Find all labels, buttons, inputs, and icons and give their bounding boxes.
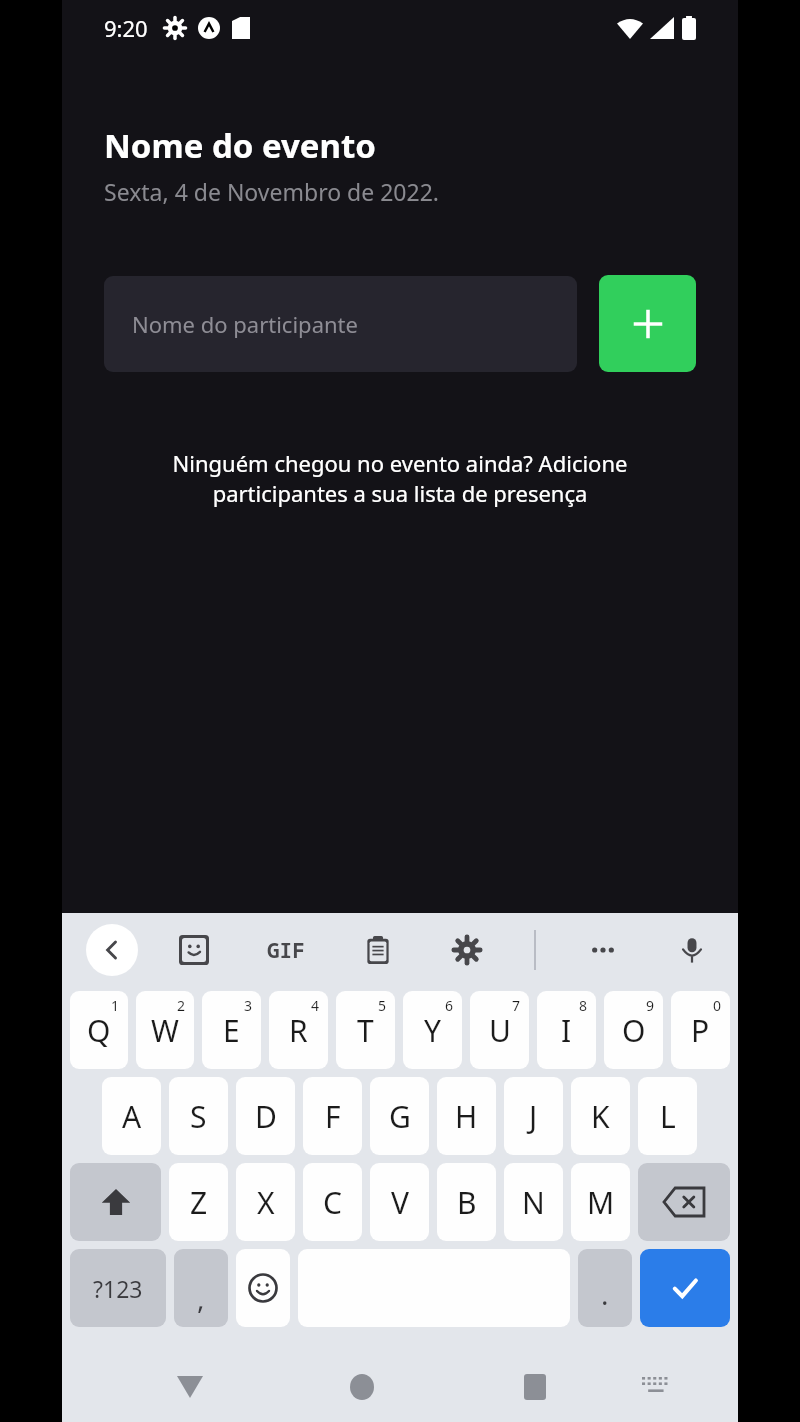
staticText: K (591, 1096, 610, 1137)
button[interactable]: D (236, 1077, 295, 1155)
button[interactable]: Voltar (165, 1362, 215, 1412)
staticText: V (391, 1182, 409, 1223)
button[interactable]: Apagar (638, 1163, 730, 1241)
button[interactable]: Voltar (86, 924, 138, 976)
button[interactable]: Início (337, 1362, 387, 1412)
staticText: 3 (244, 996, 253, 1015)
button[interactable]: Q (70, 991, 128, 1069)
button[interactable]: Shift (70, 1163, 161, 1241)
button[interactable]: U (470, 991, 529, 1069)
button[interactable]: C (303, 1163, 362, 1241)
staticText: Y (424, 1010, 441, 1051)
staticText: O (622, 1010, 646, 1051)
staticText: ?123 (93, 1273, 143, 1304)
staticText: P (691, 1010, 710, 1051)
staticText: N (522, 1182, 545, 1223)
staticText: H (455, 1096, 478, 1137)
button[interactable]: . (578, 1249, 632, 1327)
staticText: 5 (378, 996, 387, 1015)
button[interactable]: Z (169, 1163, 228, 1241)
button[interactable]: N (504, 1163, 563, 1241)
staticText: L (660, 1096, 676, 1137)
staticText: T (357, 1010, 374, 1051)
button[interactable]: Stickers (172, 928, 216, 972)
staticText: A (122, 1096, 142, 1137)
button[interactable]: Y (403, 991, 462, 1069)
button[interactable]: GIF (261, 930, 311, 971)
staticText: 1 (111, 996, 120, 1015)
staticText: I (561, 1010, 572, 1051)
staticText: Nome do participante (132, 309, 358, 339)
button[interactable]: Emoji (236, 1249, 290, 1327)
staticText: . (601, 1275, 609, 1313)
staticText: Nome do evento (104, 123, 376, 168)
staticText: X (257, 1182, 275, 1223)
staticText: 2 (177, 996, 186, 1015)
staticText: D (255, 1096, 277, 1137)
button[interactable]: P (671, 991, 730, 1069)
button[interactable]: W (136, 991, 194, 1069)
staticText: 9 (646, 996, 655, 1015)
staticText: U (489, 1010, 511, 1051)
staticText: Q (87, 1010, 111, 1051)
staticText: F (325, 1096, 341, 1137)
button[interactable]: T (336, 991, 395, 1069)
staticText: J (529, 1096, 538, 1137)
staticText: M (587, 1182, 615, 1223)
staticText: , (197, 1279, 205, 1317)
button[interactable]: Confirmar (640, 1249, 730, 1327)
button[interactable]: R (269, 991, 328, 1069)
staticText: B (457, 1182, 477, 1223)
staticText: 9:20 (104, 13, 148, 43)
staticText: E (223, 1010, 240, 1051)
button[interactable]: A (102, 1077, 161, 1155)
button[interactable]: H (437, 1077, 496, 1155)
button[interactable]: Área de transferência (356, 928, 400, 972)
staticText: 4 (311, 996, 320, 1015)
button[interactable]: S (169, 1077, 228, 1155)
button[interactable]: K (571, 1077, 630, 1155)
staticText: G (389, 1096, 411, 1137)
button[interactable]: G (370, 1077, 429, 1155)
button[interactable]: F (303, 1077, 362, 1155)
staticText: Z (190, 1182, 208, 1223)
button[interactable]: ?123 (70, 1249, 166, 1327)
button[interactable]: V (370, 1163, 429, 1241)
staticText: 7 (512, 996, 521, 1015)
staticText: GIF (267, 936, 305, 965)
button[interactable]: Trocar teclado (631, 1362, 681, 1412)
button[interactable]: Recentes (510, 1362, 560, 1412)
button[interactable]: Mais opções (581, 928, 625, 972)
button[interactable]: , (174, 1249, 228, 1327)
staticText: C (323, 1182, 342, 1223)
staticText: Sexta, 4 de Novembro de 2022. (104, 176, 439, 207)
button[interactable]: Configurações (445, 928, 489, 972)
staticText: 8 (579, 996, 588, 1015)
button[interactable]: J (504, 1077, 563, 1155)
staticText: W (151, 1010, 179, 1051)
staticText: 6 (445, 996, 454, 1015)
button[interactable]: B (437, 1163, 496, 1241)
staticText: S (190, 1096, 207, 1137)
button[interactable]: E (202, 991, 261, 1069)
staticText: R (289, 1010, 308, 1051)
button[interactable]: L (638, 1077, 697, 1155)
button[interactable]: O (604, 991, 663, 1069)
button[interactable]: Adicionar participante (599, 275, 696, 372)
button[interactable]: I (537, 991, 596, 1069)
staticText: Ninguém chegou no evento ainda? Adicione… (120, 448, 680, 508)
button[interactable]: Nome do participante (104, 276, 577, 372)
staticText: 0 (713, 996, 722, 1015)
button[interactable]: X (236, 1163, 295, 1241)
button[interactable]: Voz (670, 928, 714, 972)
button[interactable]: M (571, 1163, 630, 1241)
